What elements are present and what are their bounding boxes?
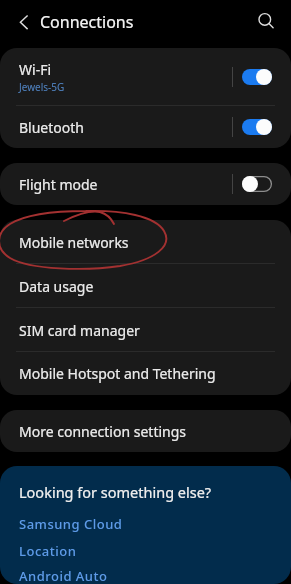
button[interactable]: More connection settings xyxy=(0,410,291,452)
staticText: Wi-Fi xyxy=(19,60,52,79)
staticText: SIM card manager xyxy=(19,321,140,340)
button[interactable]: Mobile networks xyxy=(0,220,291,264)
button[interactable]: Bluetooth xyxy=(0,106,291,148)
button[interactable]: SIM card manager xyxy=(0,308,291,352)
button[interactable]: Data usage xyxy=(0,264,291,308)
staticText: More connection settings xyxy=(19,422,187,441)
staticText: Data usage xyxy=(19,277,94,296)
staticText: Mobile Hotspot and Tethering xyxy=(19,364,216,383)
staticText: Jewels-5G xyxy=(19,80,65,94)
button[interactable]: Location xyxy=(19,542,77,560)
button[interactable]: Mobile Hotspot and Tethering xyxy=(0,352,291,395)
staticText: Connections xyxy=(40,11,134,33)
staticText: Flight mode xyxy=(19,175,98,194)
staticText: Looking for something else? xyxy=(19,482,212,502)
button[interactable]: Samsung Cloud xyxy=(19,515,123,533)
staticText: Bluetooth xyxy=(19,118,84,137)
button[interactable]: Wi-Fi xyxy=(0,48,291,106)
button[interactable]: Switch on xyxy=(242,119,272,135)
button[interactable]: Android Auto xyxy=(19,567,108,584)
button[interactable]: Back xyxy=(5,6,41,42)
button[interactable]: Switch on xyxy=(242,69,272,85)
staticText: Mobile networks xyxy=(19,233,129,252)
button[interactable]: Flight mode xyxy=(0,163,291,205)
button[interactable]: Switch off xyxy=(242,176,272,192)
button[interactable]: Search xyxy=(248,3,284,39)
